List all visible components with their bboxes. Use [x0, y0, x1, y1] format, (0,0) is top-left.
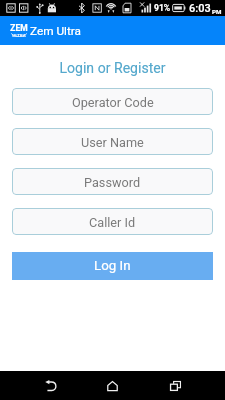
staticText: Caller Id — [89, 215, 136, 230]
button[interactable]: Password — [12, 168, 213, 195]
staticText: Zem Ultra — [30, 24, 82, 38]
staticText: Operator Code — [72, 95, 154, 110]
button[interactable]: Back — [29, 371, 71, 400]
staticText: 6:03 — [189, 2, 211, 15]
button[interactable]: Caller Id — [12, 208, 213, 235]
staticText: ULTRA — [12, 33, 26, 38]
staticText: ZEM — [10, 23, 28, 33]
button[interactable]: Log In — [12, 252, 213, 280]
staticText: Log In — [94, 258, 131, 274]
button[interactable]: Home — [91, 371, 134, 400]
staticText: Password — [84, 175, 141, 190]
staticText: User Name — [81, 135, 144, 150]
staticText: 91% — [154, 3, 171, 13]
button[interactable]: Operator Code — [12, 88, 213, 115]
staticText: PM — [212, 8, 222, 15]
staticText: Login or Register — [0, 60, 225, 77]
button[interactable]: Recents — [154, 371, 197, 400]
button[interactable]: User Name — [12, 128, 213, 155]
